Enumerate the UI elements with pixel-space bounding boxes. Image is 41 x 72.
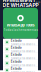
- staticText: Descarga tus estados: [11, 64, 35, 67]
- staticText: Estado: [11, 53, 22, 56]
- staticText: Descarga tus estados: [11, 43, 35, 46]
- button[interactable]: Estado: [3, 60, 38, 67]
- staticText: Todas las herramientas: [3, 28, 37, 32]
- staticText: Estado: [11, 46, 22, 49]
- staticText: WhatsApp Tools: [6, 23, 34, 27]
- staticText: DE WHATSAPP: [2, 2, 38, 8]
- staticText: Estado: [11, 39, 22, 42]
- staticText: Estado: [11, 60, 22, 63]
- staticText: Descarga tus estados: [11, 71, 35, 72]
- staticText: Descarga tus estados: [11, 50, 35, 53]
- button[interactable]: Estado: [3, 46, 38, 53]
- button[interactable]: Estado: [3, 39, 38, 46]
- button[interactable]: WhatsApp Tools: [3, 8, 38, 39]
- staticText: Estado: [11, 67, 22, 70]
- button[interactable]: Estado: [3, 67, 38, 72]
- button[interactable]: Estado: [3, 53, 38, 60]
- staticText: HERRAMIENTAS: [2, 0, 41, 4]
- staticText: Descarga tus estados: [11, 57, 35, 60]
